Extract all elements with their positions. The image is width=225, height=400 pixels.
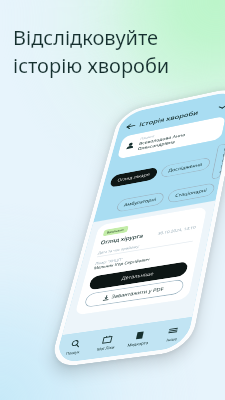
staticText: Медкарта xyxy=(127,340,149,348)
staticText: Лікар: "КНЦП" xyxy=(95,257,124,266)
button[interactable]: Завантажити у PDF xyxy=(83,279,185,308)
staticText: Амбулаторні xyxy=(123,196,157,208)
button[interactable]: Пошук xyxy=(54,331,94,364)
staticText: історію хвороби xyxy=(13,52,170,79)
staticText: Завантажити у PDF xyxy=(111,286,165,300)
button[interactable]: Виконано xyxy=(74,206,207,315)
staticText: Огляд хірурга xyxy=(100,232,144,247)
button[interactable]: Детальніше xyxy=(88,261,189,290)
button[interactable]: Back xyxy=(125,122,136,131)
staticText: Детальніше xyxy=(121,270,155,282)
staticText: 30.10.2024, 14:10 xyxy=(157,225,196,236)
staticText: Мої Ліки xyxy=(96,344,115,352)
button[interactable]: Мої Ліки xyxy=(87,326,126,360)
button[interactable]: Дослідження xyxy=(160,157,211,178)
staticText: Стаціонарні xyxy=(175,187,208,199)
staticText: Дата та час прийому: xyxy=(98,244,141,255)
button[interactable]: Проце xyxy=(211,143,225,180)
staticText: Мельник Ігор Сергійович xyxy=(93,257,151,271)
staticText: Пошук xyxy=(65,349,81,356)
button[interactable]: Огляд лікаря xyxy=(109,167,158,188)
staticText: Всеволодова Анна Олександрівна xyxy=(137,132,186,152)
button[interactable]: Пацієнт xyxy=(117,116,225,159)
staticText: Дослідження xyxy=(168,161,203,174)
button[interactable]: Expand xyxy=(218,103,225,111)
button[interactable]: Медкарта xyxy=(119,322,159,355)
button[interactable]: Амбулаторні xyxy=(115,191,165,213)
button[interactable]: Стаціонарні xyxy=(167,182,216,204)
staticText: Історія хвороби xyxy=(138,108,199,128)
staticText: Відслідковуйте xyxy=(13,24,159,51)
staticText: Огляд лікаря xyxy=(117,171,151,183)
staticText: Виконано xyxy=(106,228,125,234)
button[interactable]: Інше xyxy=(152,317,192,351)
staticText: Пацієнт xyxy=(140,134,155,140)
staticText: Інше xyxy=(166,336,178,342)
